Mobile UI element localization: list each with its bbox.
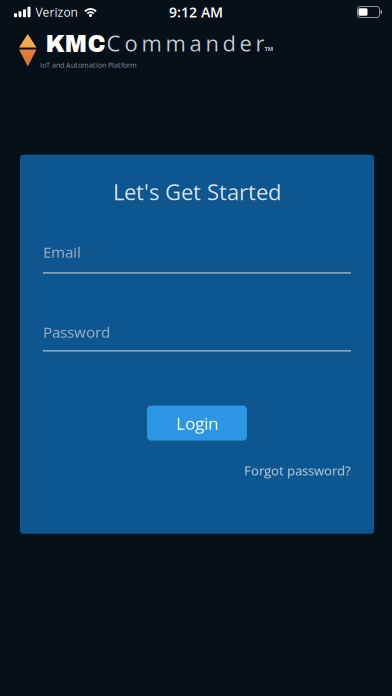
staticText: TM — [264, 44, 273, 53]
staticText: KMC — [45, 31, 105, 57]
staticText: Verizon — [35, 4, 77, 20]
staticText: Login — [176, 411, 218, 435]
staticText: Let's Get Started — [113, 177, 281, 207]
staticText: IoT and Automation Platform — [40, 60, 137, 70]
staticText: C o m m a n d e r — [106, 28, 264, 58]
staticText: Email — [43, 242, 81, 262]
staticText: 9:12 AM — [169, 2, 223, 22]
staticText: Password — [43, 322, 110, 342]
staticText: Forgot password? — [244, 462, 351, 479]
